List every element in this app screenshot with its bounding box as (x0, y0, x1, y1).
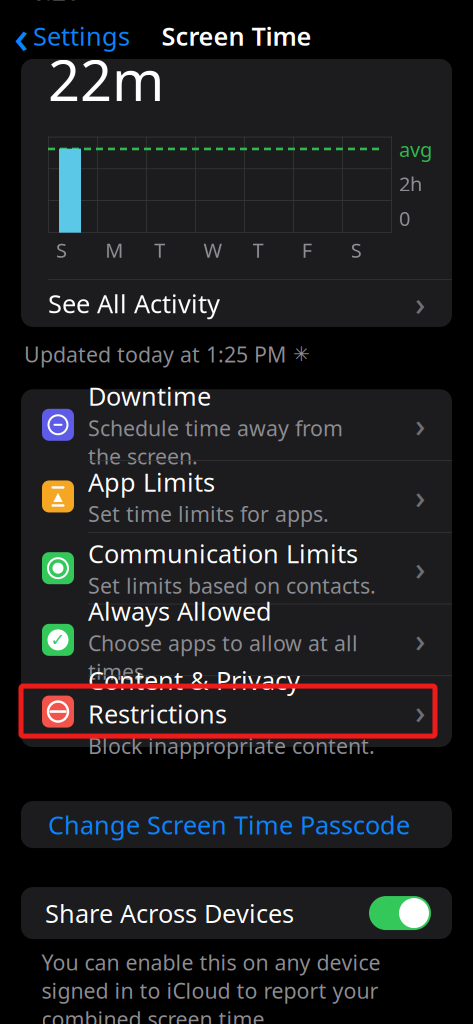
staticText: 2h (399, 170, 422, 197)
staticText: T (154, 237, 165, 263)
staticText: You can enable this on any device signed… (41, 948, 380, 1024)
staticText: Downtime (88, 379, 211, 413)
staticText: Block inappropriate content. (88, 731, 375, 760)
staticText: 0 (399, 205, 410, 232)
staticText: Share Across Devices (45, 896, 294, 930)
staticText: S (56, 237, 67, 263)
button[interactable]: ✓ (21, 604, 452, 675)
staticText: › (415, 403, 425, 446)
staticText: Set time limits for apps. (88, 500, 329, 528)
staticText: App Limits (88, 465, 215, 499)
staticText: ↓ (185, 33, 198, 51)
staticText: › (415, 282, 425, 325)
staticText: ✳ (293, 343, 310, 365)
staticText: › (415, 619, 425, 661)
staticText: W (203, 237, 222, 263)
staticText: › (415, 690, 425, 733)
staticText: Change Screen Time Passcode (48, 808, 410, 841)
button[interactable]: Communication Limits (21, 533, 452, 604)
staticText: T (253, 237, 264, 263)
staticText: Always Allowed (88, 594, 272, 628)
button[interactable]: Share Across Devices (369, 896, 431, 930)
button[interactable]: Content & Privacy Restrictions (21, 676, 452, 747)
button[interactable]: Change Screen Time Passcode (21, 801, 452, 848)
staticText: avg (399, 136, 432, 162)
staticText: 65% from last week (206, 26, 425, 58)
staticText: S (351, 237, 362, 263)
staticText: See All Activity (48, 287, 220, 320)
staticText: Updated today at 1:25 PM (24, 340, 286, 368)
staticText: ▲ (53, 490, 62, 503)
staticText: Schedule time away from the screen. (88, 414, 343, 470)
staticText: ✓ (50, 630, 65, 650)
staticText: Content & Privacy Restrictions (88, 663, 300, 731)
button[interactable]: ‹ (0, 14, 140, 58)
staticText: › (415, 547, 425, 589)
staticText: ‹ (14, 6, 29, 66)
staticText: 1:26 (31, 0, 80, 7)
staticText: M (105, 237, 123, 263)
staticText: Set limits based on contacts. (88, 571, 376, 600)
button[interactable]: Downtime (21, 389, 452, 460)
staticText: › (415, 475, 425, 518)
staticText: Communication Limits (88, 537, 358, 570)
staticText: Screen Time (161, 19, 311, 53)
staticText: F (302, 237, 312, 263)
staticText: Choose apps to allow at all times. (88, 629, 358, 686)
button[interactable]: See All Activity (21, 280, 452, 327)
staticText: 3h 22m (48, 0, 164, 117)
button[interactable]: ▲ (21, 461, 452, 532)
staticText: Settings (33, 19, 130, 53)
